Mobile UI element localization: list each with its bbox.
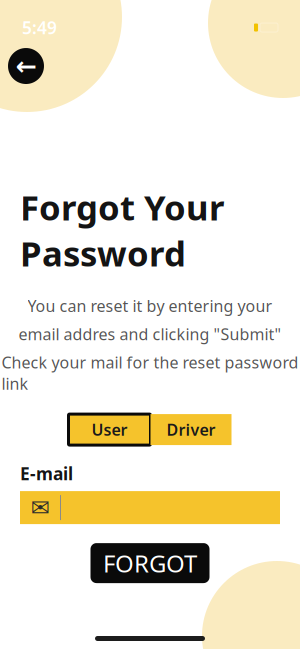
button[interactable]: User [68, 414, 150, 445]
staticText: E-mail [20, 462, 73, 485]
staticText: User [91, 419, 127, 440]
staticText: ✉ [30, 495, 49, 520]
staticText: 5:49 [22, 16, 57, 39]
staticText: Check your mail for the reset password l… [1, 352, 298, 394]
staticText: You can reset it by entering your [27, 295, 272, 316]
staticText: FORGOT [103, 547, 197, 579]
button[interactable]: Back [8, 48, 44, 84]
staticText: Driver [166, 419, 215, 440]
button[interactable]: Driver [150, 414, 231, 445]
button[interactable]: FORGOT [90, 543, 209, 583]
staticText: ← [15, 52, 36, 80]
staticText: email addres and clicking "Submit" [18, 323, 281, 344]
staticText: Forgot Your Password [20, 184, 224, 276]
